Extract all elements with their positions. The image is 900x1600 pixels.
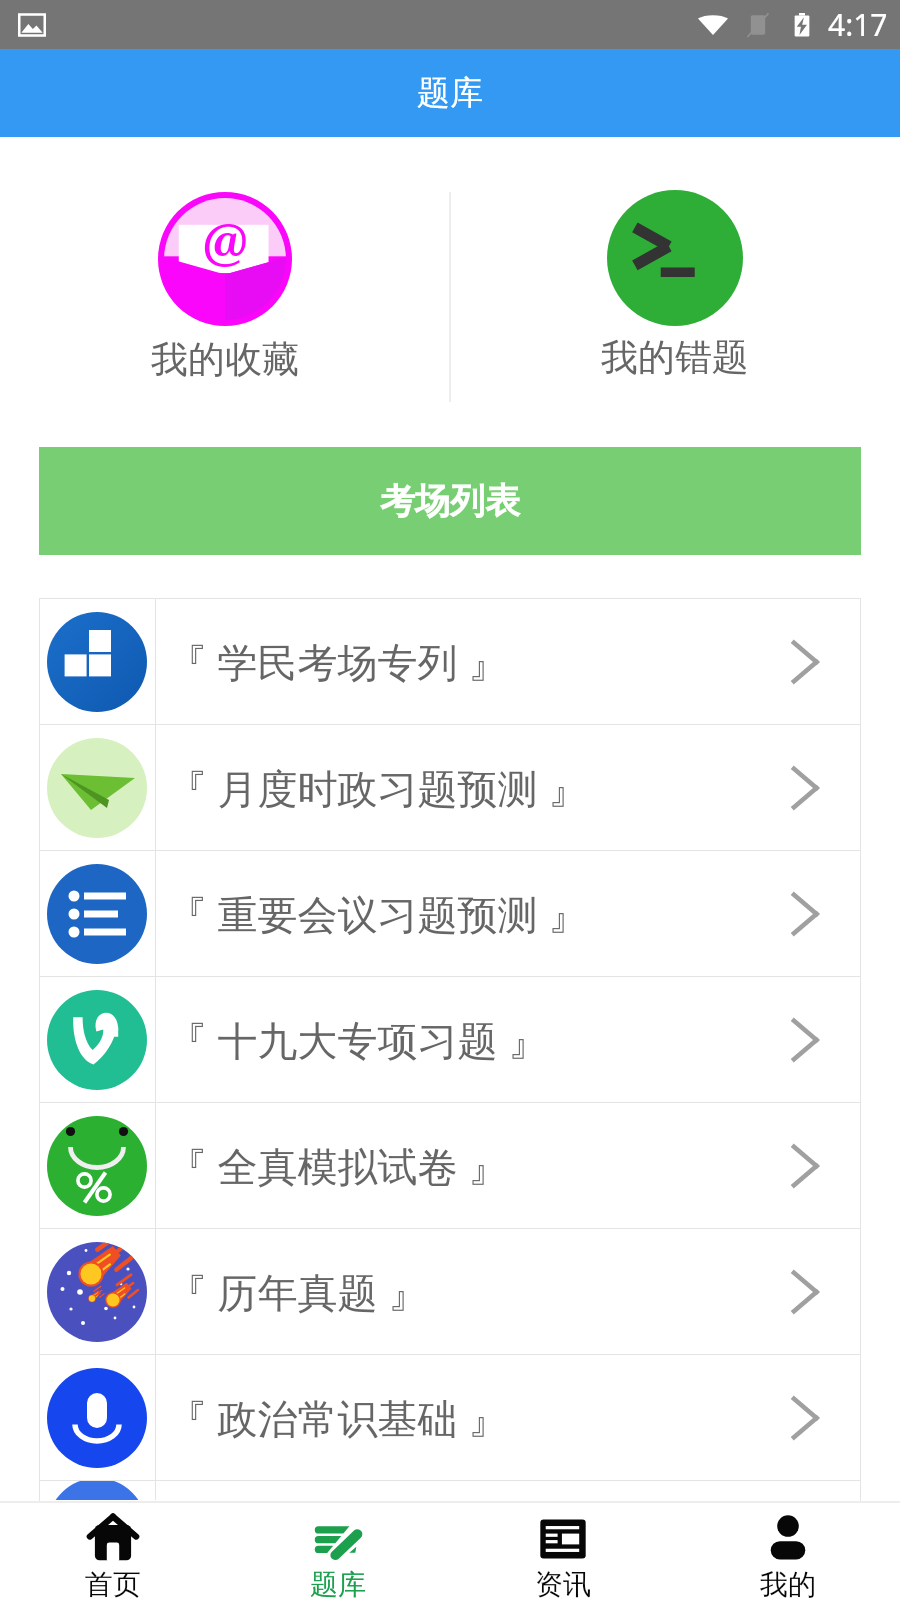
staticText: 题库 <box>417 72 483 114</box>
staticText: 『 十九大专项习题 』 <box>167 1012 548 1067</box>
button[interactable]: 资讯 <box>450 1503 675 1600</box>
staticText: 『 重要会议习题预测 』 <box>167 886 588 941</box>
button[interactable]: 我的错题 <box>450 137 900 447</box>
staticText: 『 学民考场专列 』 <box>167 634 508 689</box>
button[interactable]: 『 历年真题 』 <box>39 1229 861 1354</box>
button[interactable]: 『 全真模拟试卷 』 <box>39 1103 861 1228</box>
staticText: 考场列表 <box>380 479 520 523</box>
staticText: 『 历年真题 』 <box>167 1264 428 1319</box>
staticText: 资讯 <box>535 1567 591 1600</box>
button[interactable]: 『 重要会议习题预测 』 <box>39 851 861 976</box>
staticText: 『 政治常识基础 』 <box>167 1390 508 1445</box>
other: Screenshot notification <box>18 11 46 39</box>
staticText: 『 月度时政习题预测 』 <box>167 760 588 815</box>
staticText: 我的 <box>760 1567 816 1600</box>
staticText: 4:17 <box>828 4 888 45</box>
button[interactable]: 我的 <box>675 1503 900 1600</box>
button[interactable]: 考场列表 <box>39 447 861 555</box>
staticText: 首页 <box>85 1567 141 1600</box>
staticText: 『 全真模拟试卷 』 <box>167 1138 508 1193</box>
button[interactable]: 『 十九大专项习题 』 <box>39 977 861 1102</box>
staticText: @ <box>202 207 249 275</box>
button[interactable]: 『 政治常识基础 』 <box>39 1355 861 1480</box>
button[interactable]: 首页 <box>0 1503 225 1600</box>
button[interactable]: 『 月度时政习题预测 』 <box>39 725 861 850</box>
staticText: 我的收藏 <box>151 336 299 383</box>
button[interactable]: 『 学民考场专列 』 <box>39 599 861 724</box>
button[interactable]: @ <box>0 137 450 447</box>
staticText: 题库 <box>310 1567 366 1600</box>
staticText: 我的错题 <box>601 334 749 381</box>
button[interactable]: 题库 <box>225 1503 450 1600</box>
